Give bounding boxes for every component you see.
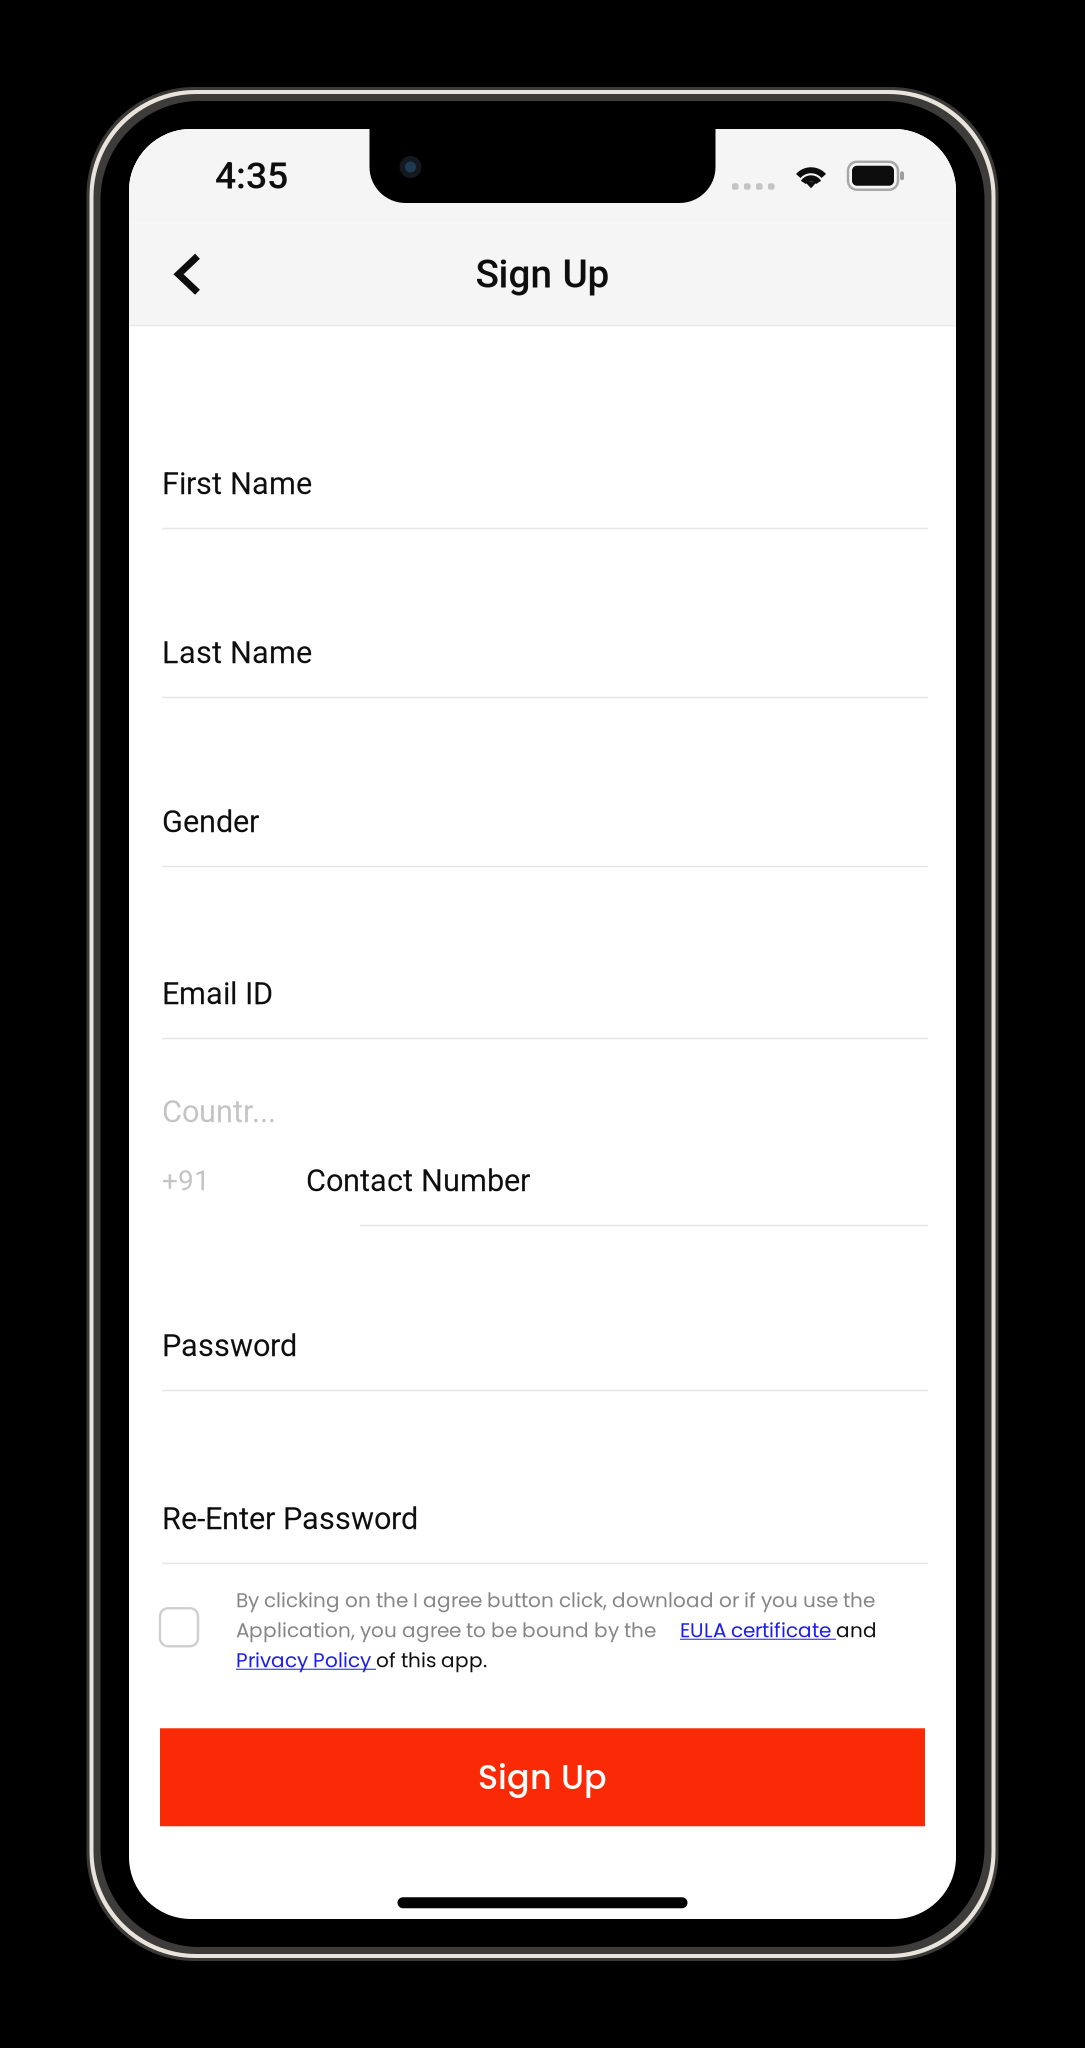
staticText: First Name	[162, 466, 312, 502]
staticText: Sign Up	[475, 252, 609, 297]
staticText: Last Name	[162, 635, 312, 671]
staticText: Sign Up	[478, 1754, 607, 1801]
button[interactable]: Back	[156, 242, 220, 306]
staticText: Email ID	[162, 976, 273, 1012]
staticText: Application, you agree to be bound by th…	[236, 1616, 656, 1644]
staticText: 4:35	[215, 154, 288, 198]
button[interactable]: Privacy Policy	[236, 1646, 376, 1674]
staticText: of this app.	[376, 1646, 487, 1674]
staticText: +91	[162, 1164, 210, 1197]
staticText: Privacy Policy	[236, 1646, 376, 1674]
staticText: EULA certificate	[680, 1616, 836, 1644]
button[interactable]: EULA certificate	[680, 1616, 836, 1644]
button[interactable]: Accept terms	[160, 1608, 198, 1646]
staticText: By clicking on the I agree button click,…	[236, 1586, 875, 1614]
staticText: Password	[162, 1328, 297, 1364]
staticText: Gender	[162, 804, 259, 840]
staticText: Re-Enter Password	[162, 1501, 418, 1537]
staticText: and	[836, 1616, 877, 1644]
button[interactable]: Sign Up	[160, 1728, 925, 1826]
staticText: Countr...	[162, 1094, 276, 1130]
staticText: Contact Number	[306, 1163, 530, 1199]
